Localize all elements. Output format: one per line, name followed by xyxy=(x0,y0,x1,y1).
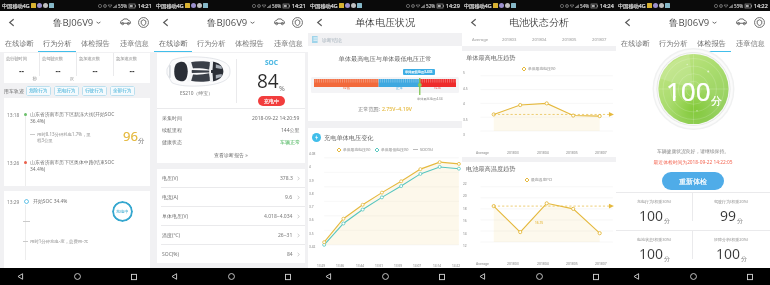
staticText: 201805 xyxy=(562,37,577,43)
button[interactable]: Recents xyxy=(743,270,756,283)
button[interactable]: Security xyxy=(752,15,766,29)
button[interactable]: Home xyxy=(687,270,700,283)
button[interactable]: Vehicle xyxy=(734,15,748,29)
staticText: 3 xyxy=(463,133,465,137)
staticText: 用车轨迹 xyxy=(4,88,24,94)
staticText: 14:22 xyxy=(754,2,768,9)
button[interactable]: Back xyxy=(630,270,643,283)
button[interactable]: Back xyxy=(620,15,634,29)
staticText: 12 xyxy=(463,244,467,248)
staticText: ES210（绅宝） xyxy=(180,90,213,97)
button[interactable]: Home xyxy=(379,270,392,283)
staticText: 2018-09-22 14:20:59 xyxy=(252,115,300,122)
button[interactable]: Home xyxy=(533,270,546,283)
button[interactable]: Vehicle xyxy=(118,15,132,29)
staticText: 中国移动4G xyxy=(156,2,184,9)
staticText: 充电中 xyxy=(116,209,129,214)
button[interactable]: Back xyxy=(4,15,18,29)
staticText: 最近体检时间为2018-09-22 14:22:05 xyxy=(616,159,770,166)
button[interactable]: 重新体检 xyxy=(662,172,724,190)
staticText: 在线诊断 xyxy=(5,39,34,48)
staticText: 车辆正常 xyxy=(280,139,300,145)
button[interactable]: Home xyxy=(71,270,84,283)
staticText: 201805 xyxy=(566,261,578,266)
button[interactable]: Recents xyxy=(589,270,602,283)
button[interactable]: Recents xyxy=(281,270,294,283)
staticText: Average xyxy=(476,261,490,266)
button[interactable]: 行为分析 xyxy=(654,33,692,51)
staticText: 开始SOC 34.4% xyxy=(33,198,127,205)
staticText: 中国移动4G xyxy=(2,2,30,9)
button[interactable]: Vehicle xyxy=(272,15,286,29)
button[interactable]: 行为分析 xyxy=(38,33,76,51)
staticText: 201803 xyxy=(507,150,519,155)
staticText: 3.5 xyxy=(463,118,468,122)
staticText: 电池最高温度趋势 xyxy=(466,165,516,173)
button[interactable]: 查看诊断报告 » xyxy=(157,148,305,163)
button[interactable]: 违章信息 xyxy=(115,33,154,51)
staticText: 分 xyxy=(711,94,722,108)
staticText: 重新体检 xyxy=(679,177,707,186)
staticText: 100 xyxy=(639,206,664,225)
button[interactable]: Back xyxy=(14,270,27,283)
staticText: 正常范围: xyxy=(358,105,382,112)
staticText: 电池状态分析 xyxy=(509,16,569,29)
button[interactable]: 体检报告 xyxy=(230,33,269,51)
button[interactable]: Back xyxy=(158,15,172,29)
button[interactable]: 在线诊断 xyxy=(0,33,38,51)
button[interactable]: 体检报告 xyxy=(76,33,115,51)
button[interactable]: 全部行为 xyxy=(113,86,132,96)
staticText: 急加速次数 xyxy=(116,56,137,61)
button[interactable]: Recents xyxy=(127,270,140,283)
button[interactable]: 在线诊断 xyxy=(154,33,192,51)
staticText: 分 xyxy=(741,255,747,263)
button[interactable]: 温度(℃) xyxy=(162,226,301,244)
button[interactable]: 危险行为 xyxy=(29,86,48,96)
button[interactable]: SOC(%) xyxy=(162,245,301,263)
button[interactable]: 违章信息 xyxy=(269,33,308,51)
button[interactable]: Recents xyxy=(435,270,448,283)
staticText: 3.8 xyxy=(309,192,314,196)
button[interactable]: 电压(V) xyxy=(162,169,301,187)
staticText: 3.42 xyxy=(309,245,316,249)
staticText: 201803 xyxy=(502,37,517,43)
staticText: 14:14 xyxy=(433,264,442,268)
button[interactable]: Home xyxy=(225,270,238,283)
button[interactable]: 在线诊断 xyxy=(616,33,654,51)
button[interactable]: 充电中 xyxy=(264,98,279,104)
staticText: % xyxy=(279,84,285,94)
staticText: 鲁BJ06V9 xyxy=(207,16,248,29)
button[interactable]: Back xyxy=(168,270,181,283)
staticText: 14 xyxy=(463,232,467,236)
button[interactable]: Back xyxy=(312,15,326,29)
staticText: 201807 xyxy=(595,150,607,155)
button[interactable]: 单体电压(V) xyxy=(162,207,301,225)
staticText: 13:26 xyxy=(7,160,21,167)
staticText: SOC(%) xyxy=(162,251,179,258)
staticText: 全部行为 xyxy=(113,88,132,94)
staticText: 26~31 xyxy=(278,232,293,239)
button[interactable]: Security xyxy=(136,15,150,29)
staticText: 健康状态 xyxy=(162,139,182,145)
staticText: 201803 xyxy=(507,261,519,266)
button[interactable]: 行为分析 xyxy=(192,33,230,51)
staticText: 84 xyxy=(257,68,279,94)
button[interactable]: 充电中 xyxy=(112,201,133,222)
staticText: 5 xyxy=(463,71,465,75)
staticText: 3.7 xyxy=(309,205,314,209)
staticText: 100 xyxy=(639,244,664,263)
staticText: 危险行为 xyxy=(29,88,48,94)
button[interactable]: 行驶行为 xyxy=(85,86,104,96)
staticText: 过高 xyxy=(434,86,442,91)
button[interactable]: Back xyxy=(466,15,480,29)
staticText: 中国移动4G xyxy=(464,2,492,9)
button[interactable]: 充电行为 xyxy=(57,86,76,96)
button[interactable]: Back xyxy=(476,270,489,283)
button[interactable]: 体检报告 xyxy=(692,33,731,51)
button[interactable]: Security xyxy=(290,15,304,29)
button[interactable]: Back xyxy=(322,270,335,283)
button[interactable]: 违章信息 xyxy=(731,33,770,51)
button[interactable]: 电流(A) xyxy=(162,188,301,206)
staticText: 充电中 xyxy=(264,98,279,104)
